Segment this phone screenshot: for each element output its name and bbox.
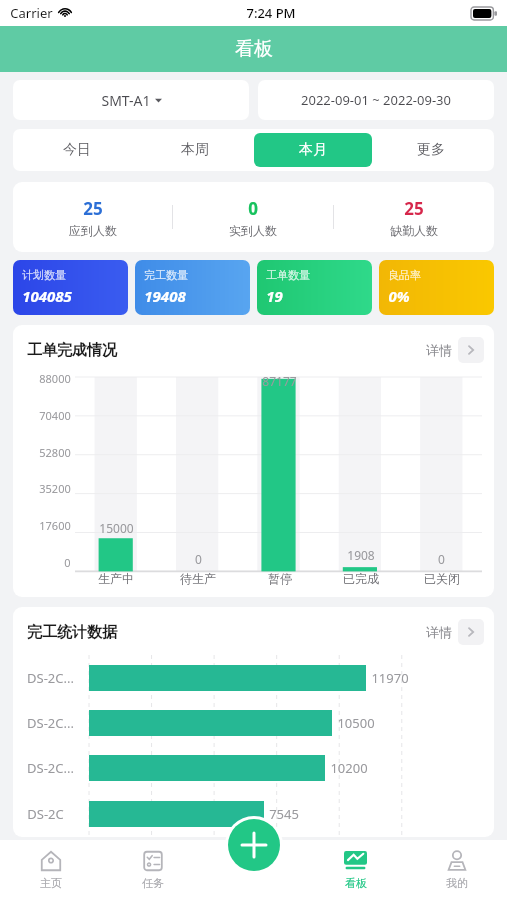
- staticText: 52800: [39, 445, 71, 457]
- staticText: 今日: [63, 141, 91, 159]
- staticText: 10200: [330, 759, 368, 777]
- staticText: 计划数量: [22, 268, 66, 282]
- staticText: 19408: [144, 286, 186, 306]
- staticText: 暂停: [268, 571, 292, 586]
- staticText: 完工统计数据: [27, 623, 117, 642]
- staticText: Carrier: [10, 4, 53, 22]
- staticText: 工单数量: [266, 268, 310, 282]
- staticText: 0: [195, 551, 202, 567]
- button[interactable]: 主页: [0, 840, 102, 900]
- button[interactable]: 良品率: [379, 260, 494, 315]
- button[interactable]: Add: [228, 819, 280, 871]
- button[interactable]: SMT-A1: [13, 80, 249, 120]
- button[interactable]: 今日: [17, 133, 136, 167]
- staticText: 10500: [337, 714, 375, 732]
- staticText: 我的: [446, 876, 468, 890]
- button[interactable]: 详情: [426, 337, 484, 363]
- staticText: 88000: [39, 371, 71, 383]
- button[interactable]: 看板: [305, 840, 406, 900]
- staticText: 104085: [22, 286, 72, 306]
- staticText: 已完成: [343, 571, 379, 586]
- staticText: SMT-A1: [101, 91, 151, 110]
- staticText: 11970: [371, 669, 409, 687]
- staticText: 35200: [39, 481, 71, 493]
- button[interactable]: 我的: [406, 840, 507, 900]
- staticText: DS-2C...: [27, 669, 74, 687]
- staticText: 已关闭: [424, 571, 460, 586]
- staticText: 更多: [417, 141, 445, 159]
- staticText: 本月: [299, 141, 327, 159]
- staticText: DS-2C: [27, 805, 64, 823]
- button[interactable]: 25: [13, 197, 172, 238]
- staticText: DS-2C...: [27, 759, 74, 777]
- staticText: 0%: [388, 286, 410, 306]
- staticText: 完工数量: [144, 268, 188, 282]
- staticText: 详情: [426, 342, 452, 358]
- button[interactable]: 2022-09-01 ~ 2022-09-30: [258, 80, 494, 120]
- button[interactable]: 本周: [136, 133, 254, 167]
- button[interactable]: 0: [173, 197, 333, 238]
- staticText: 良品率: [388, 268, 421, 282]
- staticText: 工单完成情况: [27, 341, 117, 360]
- button[interactable]: 更多: [372, 133, 490, 167]
- staticText: 7545: [269, 805, 299, 823]
- staticText: 应到人数: [69, 223, 117, 238]
- staticText: 7:24 PM: [246, 4, 296, 22]
- staticText: 主页: [40, 876, 62, 890]
- button[interactable]: 25: [334, 197, 494, 238]
- staticText: DS-2C...: [27, 714, 74, 732]
- button[interactable]: 任务: [102, 840, 204, 900]
- button[interactable]: 本月: [254, 133, 372, 167]
- staticText: 0: [64, 555, 71, 567]
- staticText: 缺勤人数: [390, 223, 438, 238]
- staticText: 0: [438, 551, 445, 567]
- staticText: 87177: [262, 373, 297, 389]
- button[interactable]: 工单数量: [257, 260, 372, 315]
- staticText: 19: [266, 286, 283, 306]
- staticText: 0: [248, 197, 258, 220]
- button[interactable]: 完工数量: [135, 260, 250, 315]
- staticText: 待生产: [180, 571, 216, 586]
- button[interactable]: 计划数量: [13, 260, 128, 315]
- staticText: 本周: [181, 141, 209, 159]
- staticText: 2022-09-01 ~ 2022-09-30: [301, 91, 451, 109]
- staticText: 任务: [142, 876, 164, 890]
- staticText: 生产中: [98, 571, 134, 586]
- staticText: 看板: [345, 876, 367, 890]
- staticText: 详情: [426, 624, 452, 640]
- staticText: 15000: [99, 520, 134, 536]
- staticText: 1908: [347, 547, 375, 563]
- staticText: 实到人数: [229, 223, 277, 238]
- staticText: 70400: [39, 408, 71, 420]
- button[interactable]: 详情: [426, 619, 484, 645]
- staticText: 看板: [235, 37, 273, 61]
- staticText: 25: [83, 197, 103, 220]
- staticText: 17600: [39, 518, 71, 530]
- staticText: 25: [404, 197, 424, 220]
